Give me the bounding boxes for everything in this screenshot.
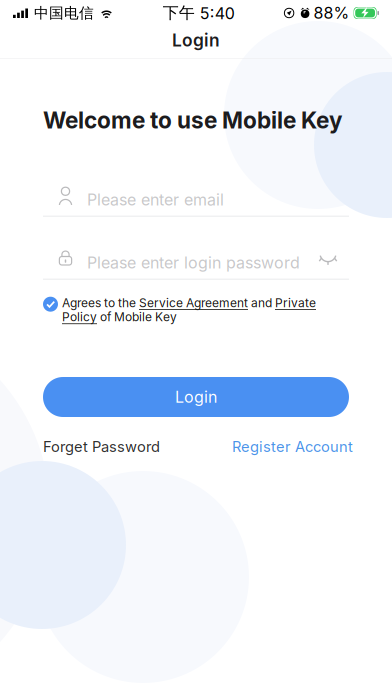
button[interactable]: Agrees to the Service Agreement and Priv… [43, 296, 349, 324]
button[interactable]: Register Account [232, 438, 353, 455]
staticText: Welcome to use Mobile Key [43, 107, 342, 134]
staticText: Forget Password [43, 438, 160, 455]
staticText: Agrees to the Service Agreement and Priv… [62, 296, 316, 324]
staticText: Please enter email [87, 190, 224, 209]
staticText: 88% [314, 4, 350, 22]
button[interactable]: Show password [316, 245, 349, 281]
staticText: Login [172, 30, 220, 50]
staticText: Register Account [232, 438, 353, 455]
staticText: Login [175, 388, 217, 406]
button[interactable]: Forget Password [43, 438, 160, 455]
staticText: Please enter login password [87, 253, 300, 272]
staticText: 下午 5:40 [163, 3, 235, 23]
button[interactable]: Login [43, 377, 349, 417]
staticText: 中国电信 [34, 4, 94, 22]
